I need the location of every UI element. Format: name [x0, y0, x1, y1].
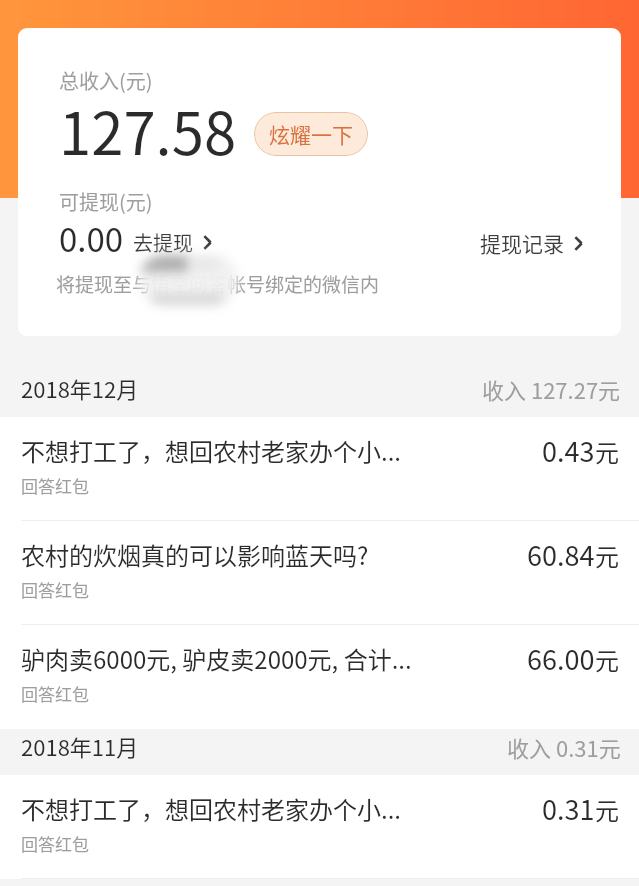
staticText: 66.00	[527, 639, 595, 678]
staticText: 炫耀一下	[269, 119, 353, 149]
button[interactable]: 去提现	[133, 228, 212, 257]
staticText: 127.58	[59, 88, 237, 172]
staticText: 收入 127.27元	[482, 373, 621, 405]
button[interactable]: 不想打工了，想回农村老家办个小...	[0, 775, 639, 879]
staticText: 2018年12月	[21, 372, 139, 404]
staticText: 去提现	[133, 228, 193, 257]
staticText: 元	[595, 642, 619, 677]
staticText: 回答红包	[21, 831, 89, 856]
button[interactable]: 2018年11月	[0, 729, 639, 775]
staticText: 元	[595, 538, 619, 573]
staticText: 0.00	[59, 214, 124, 262]
staticText: 农村的炊烟真的可以影响蓝天吗?	[21, 537, 369, 572]
staticText: 60.84	[527, 535, 595, 574]
staticText: 收入 0.31元	[507, 731, 621, 763]
staticText: 回答红包	[21, 681, 89, 706]
staticText: 将提现至与悟空问答帐号绑定的微信内	[56, 270, 380, 298]
staticText: 提现记录	[480, 228, 564, 258]
button[interactable]: 农村的炊烟真的可以影响蓝天吗?	[0, 521, 639, 625]
button[interactable]: 驴肉卖6000元, 驴皮卖2000元, 合计...	[0, 625, 639, 729]
staticText: 回答红包	[21, 577, 89, 602]
staticText: 元	[595, 792, 619, 827]
staticText: 不想打工了，想回农村老家办个小...	[21, 433, 402, 468]
staticText: 元	[595, 434, 619, 469]
staticText: 0.31	[542, 789, 595, 828]
staticText: 回答红包	[21, 473, 89, 498]
staticText: 驴肉卖6000元, 驴皮卖2000元, 合计...	[21, 641, 412, 676]
staticText: 0.43	[542, 431, 595, 470]
button[interactable]: 炫耀一下	[254, 112, 368, 156]
staticText: 不想打工了，想回农村老家办个小...	[21, 791, 402, 826]
staticText: 可提现(元)	[59, 187, 153, 216]
staticText: 总收入(元)	[59, 66, 153, 95]
staticText: 2018年11月	[21, 730, 139, 762]
button[interactable]: 不想打工了，想回农村老家办个小...	[0, 417, 639, 521]
button[interactable]: 2018年12月	[0, 371, 639, 417]
button[interactable]: 提现记录	[480, 228, 583, 258]
